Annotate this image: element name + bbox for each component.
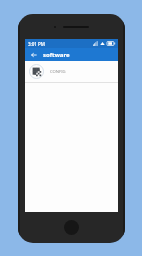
staticText: 3:01 PM bbox=[28, 41, 45, 47]
button[interactable]: Back bbox=[28, 49, 39, 60]
staticText: software bbox=[43, 51, 70, 59]
button[interactable]: CONFIG bbox=[25, 61, 118, 82]
button[interactable]: Home bbox=[64, 220, 79, 235]
staticText: CONFIG bbox=[50, 69, 66, 75]
